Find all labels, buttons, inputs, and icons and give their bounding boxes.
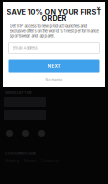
- staticText: NEWSLETTER: [5, 90, 32, 95]
- staticText: ✕: [96, 5, 101, 12]
- staticText: Email Address: [12, 46, 37, 50]
- staticText: SAVE 10% ON YOUR FIRST: [6, 9, 101, 15]
- button[interactable]: No thanks: [42, 76, 65, 83]
- button[interactable]: Instagram: [22, 130, 29, 137]
- button[interactable]: Close: [94, 4, 103, 13]
- staticText: No thanks: [45, 77, 62, 82]
- staticText: Shipping · Returns · Contact us: [5, 158, 59, 163]
- staticText: NEXT: [47, 63, 60, 69]
- staticText: Get VIP access to new product launches a…: [9, 23, 98, 38]
- staticText: ORDER: [41, 15, 66, 22]
- button[interactable]: NEXT: [8, 59, 99, 72]
- button[interactable]: Twitter: [38, 130, 45, 137]
- button[interactable]: Facebook: [6, 130, 13, 137]
- staticText: CUSTOMER CARE: [5, 151, 36, 155]
